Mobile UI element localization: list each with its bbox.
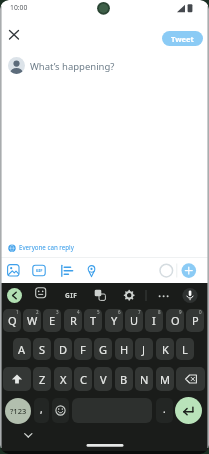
button[interactable]: Z: [33, 367, 51, 391]
staticText: 6: [118, 309, 121, 315]
button[interactable]: [61, 286, 83, 303]
button[interactable]: Q: [3, 309, 21, 332]
staticText: E: [49, 313, 56, 328]
staticText: 8: [158, 309, 161, 315]
staticText: I: [152, 313, 156, 328]
button[interactable]: Y: [105, 309, 123, 332]
button[interactable]: E: [43, 309, 61, 332]
staticText: 0: [199, 309, 202, 315]
staticText: .: [163, 402, 166, 416]
staticText: 7: [138, 309, 141, 315]
staticText: 9: [179, 309, 182, 315]
staticText: O: [171, 313, 180, 328]
button[interactable]: Everyone can reply: [7, 242, 97, 254]
staticText: R: [70, 313, 77, 328]
button[interactable]: V: [94, 367, 112, 391]
staticText: V: [100, 372, 107, 387]
button[interactable]: ?123: [5, 398, 31, 424]
button[interactable]: H: [115, 338, 133, 360]
staticText: A: [18, 342, 26, 357]
button[interactable]: U: [125, 309, 143, 332]
button[interactable]: C: [74, 367, 92, 391]
staticText: X: [60, 372, 67, 387]
staticText: ?123: [10, 406, 27, 416]
staticText: 2: [36, 309, 39, 315]
staticText: M: [160, 372, 170, 387]
button[interactable]: [5, 26, 23, 44]
button[interactable]: [152, 287, 168, 303]
staticText: Tweet: [171, 34, 194, 44]
staticText: 10:00: [10, 3, 28, 12]
button[interactable]: D: [54, 338, 72, 360]
button[interactable]: F: [74, 338, 92, 360]
staticText: H: [120, 342, 129, 357]
button[interactable]: P: [186, 309, 204, 332]
button[interactable]: [3, 367, 31, 391]
staticText: G: [99, 342, 108, 357]
button[interactable]: L: [176, 338, 194, 360]
staticText: 4: [77, 309, 80, 315]
button[interactable]: [19, 428, 38, 444]
staticText: D: [59, 342, 68, 357]
button[interactable]: J: [135, 338, 153, 360]
staticText: ,: [40, 402, 43, 416]
button[interactable]: [4, 260, 23, 279]
button[interactable]: [121, 286, 138, 303]
staticText: J: [142, 342, 146, 357]
button[interactable]: [176, 367, 205, 391]
staticText: S: [39, 342, 46, 357]
staticText: W: [27, 313, 38, 328]
button[interactable]: [175, 397, 202, 424]
button[interactable]: A: [13, 338, 31, 360]
staticText: 5: [97, 309, 100, 315]
staticText: GIF: [65, 291, 78, 300]
staticText: 3: [56, 309, 59, 315]
button[interactable]: Tweet: [162, 31, 203, 46]
staticText: U: [130, 313, 139, 328]
button[interactable]: [29, 260, 48, 279]
staticText: Z: [39, 372, 46, 387]
staticText: K: [162, 342, 169, 357]
button[interactable]: [33, 286, 48, 303]
button[interactable]: K: [156, 338, 174, 360]
button[interactable]: I: [145, 309, 163, 332]
staticText: GIF: [33, 268, 45, 276]
button[interactable]: .: [156, 398, 173, 423]
button[interactable]: M: [156, 367, 174, 391]
button[interactable]: [181, 286, 199, 304]
button[interactable]: [56, 260, 75, 279]
button[interactable]: S: [33, 338, 51, 360]
staticText: What’s happening?: [30, 60, 115, 73]
button[interactable]: T: [84, 309, 102, 332]
button[interactable]: [7, 288, 22, 303]
staticText: T: [90, 313, 97, 328]
staticText: F: [80, 342, 86, 357]
button[interactable]: X: [54, 367, 72, 391]
button[interactable]: [92, 286, 109, 303]
staticText: L: [182, 342, 188, 357]
button[interactable]: W: [23, 309, 41, 332]
button[interactable]: [83, 260, 102, 279]
button[interactable]: N: [135, 367, 153, 391]
staticText: P: [192, 313, 199, 328]
button[interactable]: O: [166, 309, 184, 332]
staticText: N: [140, 372, 149, 387]
button[interactable]: ,: [34, 398, 49, 423]
staticText: Y: [111, 313, 118, 328]
button[interactable]: B: [115, 367, 133, 391]
staticText: Q: [8, 313, 17, 328]
staticText: B: [120, 372, 128, 387]
staticText: 1: [16, 309, 19, 315]
button[interactable]: [180, 261, 198, 279]
staticText: Everyone can reply: [19, 243, 74, 251]
staticText: C: [80, 372, 87, 387]
button[interactable]: R: [64, 309, 82, 332]
button[interactable]: [52, 398, 69, 423]
button[interactable]: G: [94, 338, 112, 360]
